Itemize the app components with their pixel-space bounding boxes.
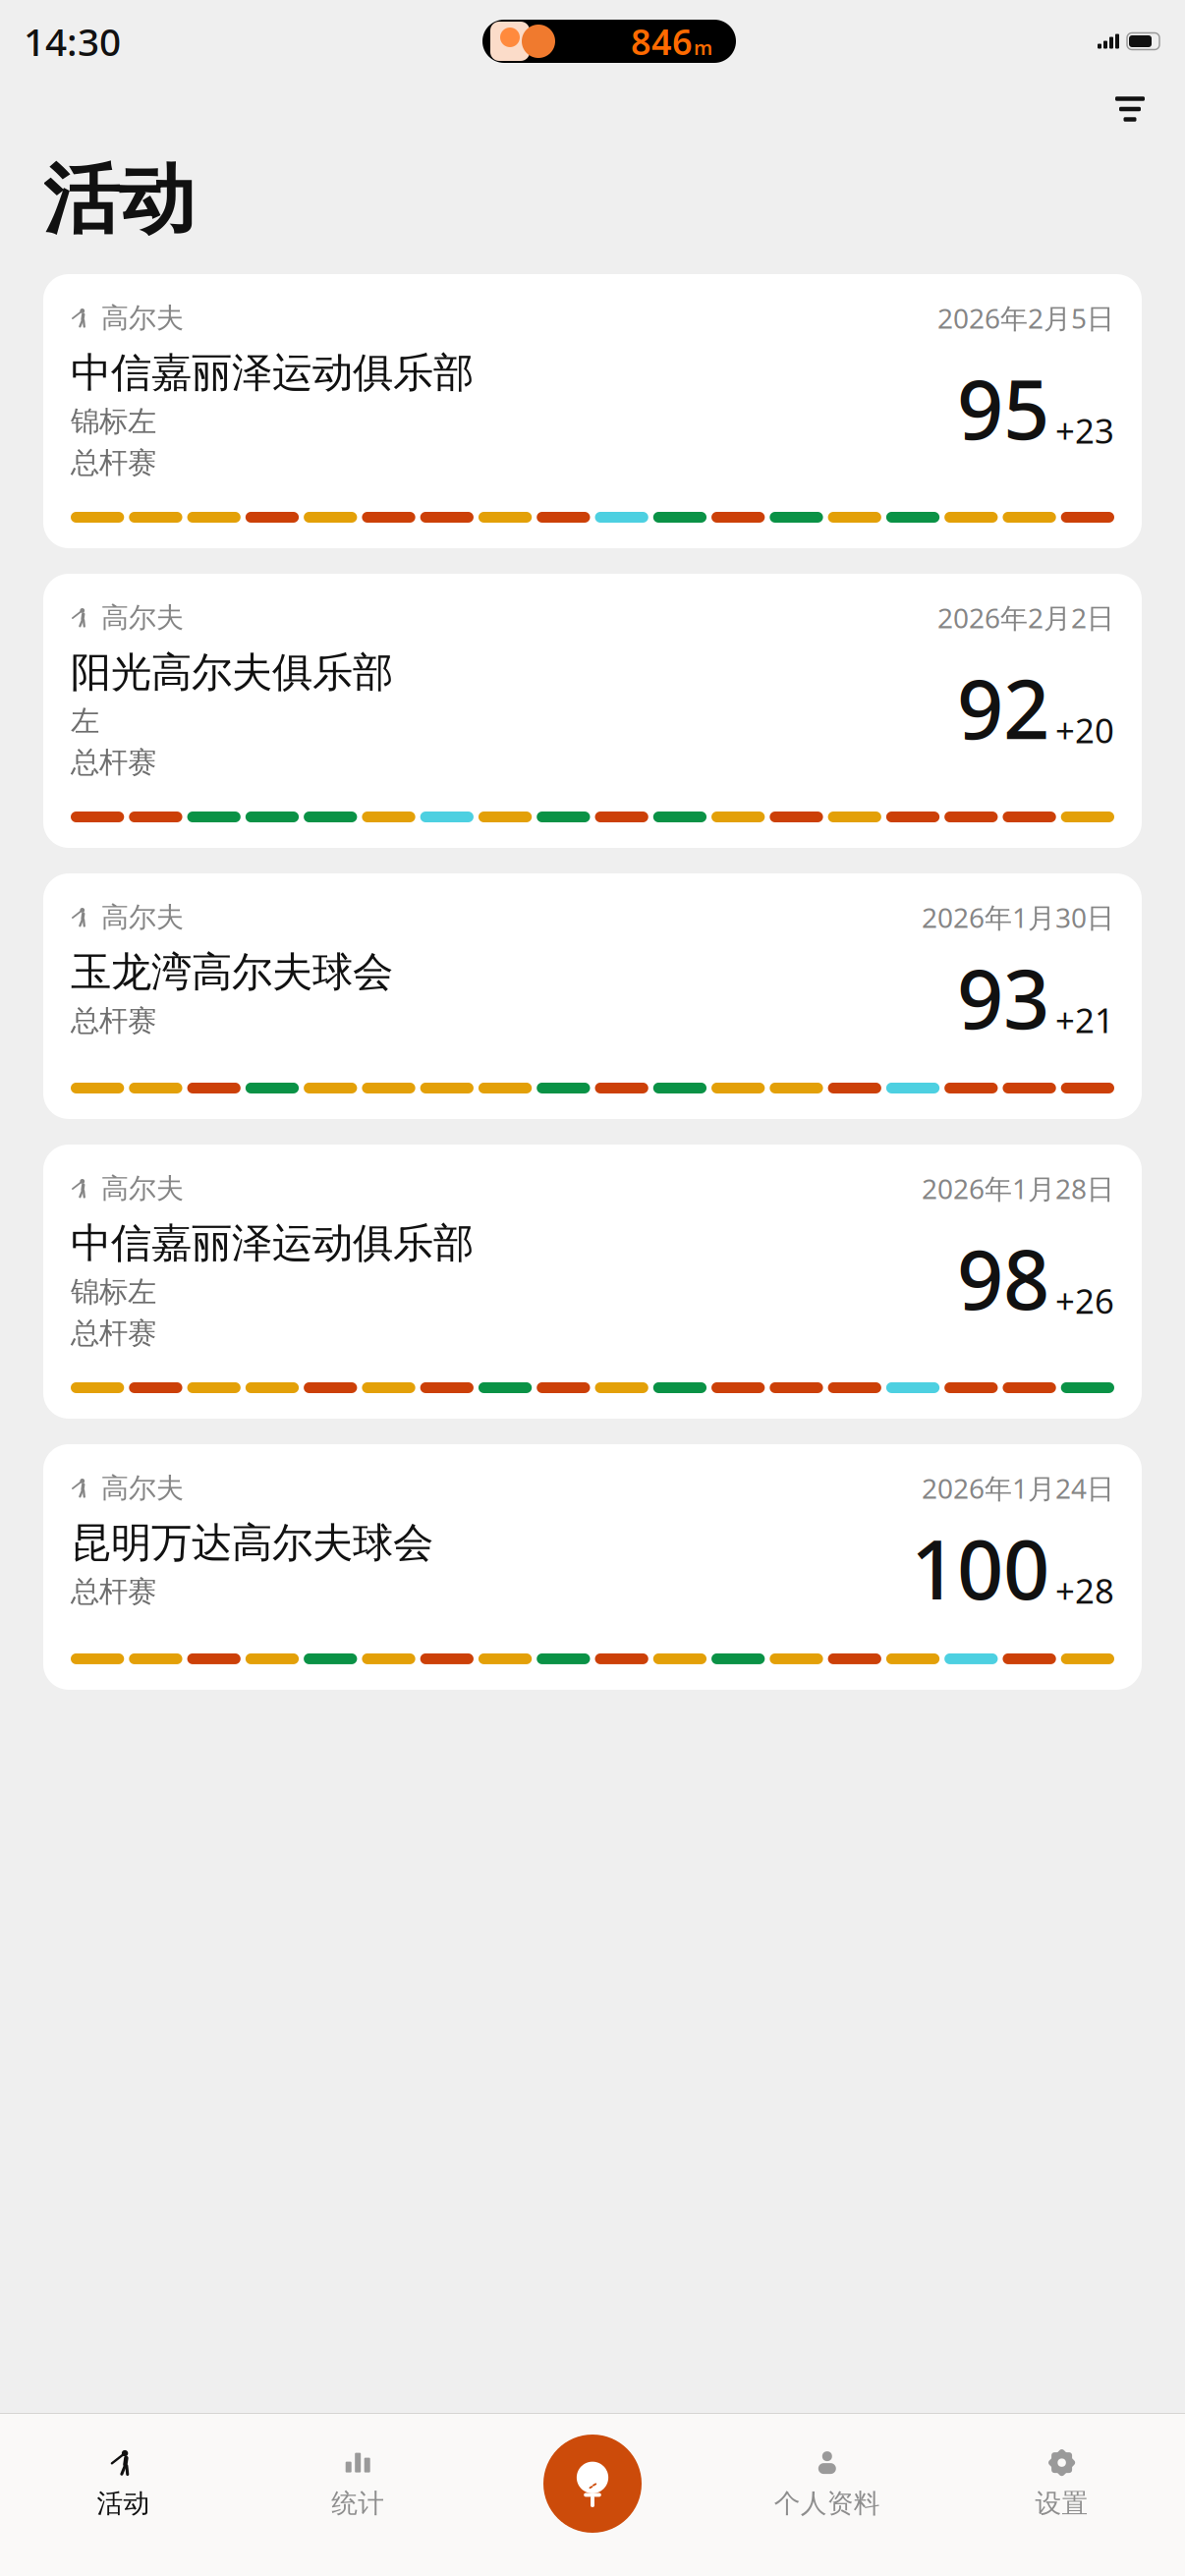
button[interactable]: 高尔夫 [43, 274, 1142, 548]
staticText: 总杆赛 [71, 1574, 156, 1609]
button[interactable]: 开始新的一轮 [475, 2435, 710, 2533]
staticText: +20 [1055, 707, 1114, 752]
staticText: 总杆赛 [71, 445, 156, 480]
button[interactable]: 个人资料 [710, 2448, 944, 2519]
staticText: 个人资料 [774, 2487, 880, 2519]
staticText: 2026年1月28日 [922, 1170, 1114, 1207]
staticText: 锦标左 [71, 1274, 156, 1310]
staticText: 95 [957, 354, 1049, 462]
staticText: 阳光高尔夫俱乐部 [71, 648, 393, 698]
staticText: 昆明万达高尔夫球会 [71, 1518, 433, 1568]
staticText: 活动 [43, 153, 195, 247]
staticText: 玉龙湾高尔夫球会 [71, 947, 393, 997]
staticText: m [694, 34, 712, 60]
staticText: +21 [1055, 997, 1114, 1042]
staticText: 100 [911, 1514, 1049, 1622]
button[interactable]: 高尔夫 [43, 574, 1142, 848]
staticText: 活动 [97, 2487, 150, 2519]
staticText: 2026年1月30日 [922, 899, 1114, 935]
staticText: 锦标左 [71, 404, 156, 439]
staticText: 高尔夫 [101, 1171, 184, 1205]
staticText: 左 [71, 703, 99, 739]
staticText: +26 [1055, 1278, 1114, 1323]
button[interactable]: 高尔夫 [43, 1145, 1142, 1419]
button[interactable]: 活动 [6, 2448, 241, 2519]
staticText: 98 [957, 1224, 1049, 1332]
button[interactable]: 高尔夫 [43, 873, 1142, 1119]
staticText: 中信嘉丽泽运动俱乐部 [71, 348, 474, 398]
staticText: 2026年2月2日 [937, 599, 1114, 636]
button[interactable]: 设置 [944, 2448, 1179, 2519]
staticText: +28 [1055, 1568, 1114, 1613]
button[interactable]: 统计 [241, 2448, 475, 2519]
button[interactable]: 高尔夫 [43, 1444, 1142, 1690]
staticText: 846 [631, 18, 693, 65]
staticText: 2026年2月5日 [937, 300, 1114, 336]
staticText: 设置 [1035, 2487, 1088, 2519]
staticText: 高尔夫 [101, 1471, 184, 1505]
staticText: 92 [957, 654, 1049, 761]
staticText: 高尔夫 [101, 900, 184, 934]
staticText: 93 [957, 943, 1049, 1051]
staticText: 14:30 [24, 16, 121, 66]
staticText: 高尔夫 [101, 301, 184, 335]
staticText: +23 [1055, 408, 1114, 453]
staticText: 总杆赛 [71, 745, 156, 780]
button[interactable]: 筛选 [1102, 83, 1157, 136]
staticText: 总杆赛 [71, 1003, 156, 1038]
staticText: 统计 [331, 2487, 384, 2519]
staticText: 2026年1月24日 [922, 1470, 1114, 1506]
staticText: 高尔夫 [101, 601, 184, 634]
staticText: 中信嘉丽泽运动俱乐部 [71, 1218, 474, 1268]
staticText: 总杆赛 [71, 1315, 156, 1351]
